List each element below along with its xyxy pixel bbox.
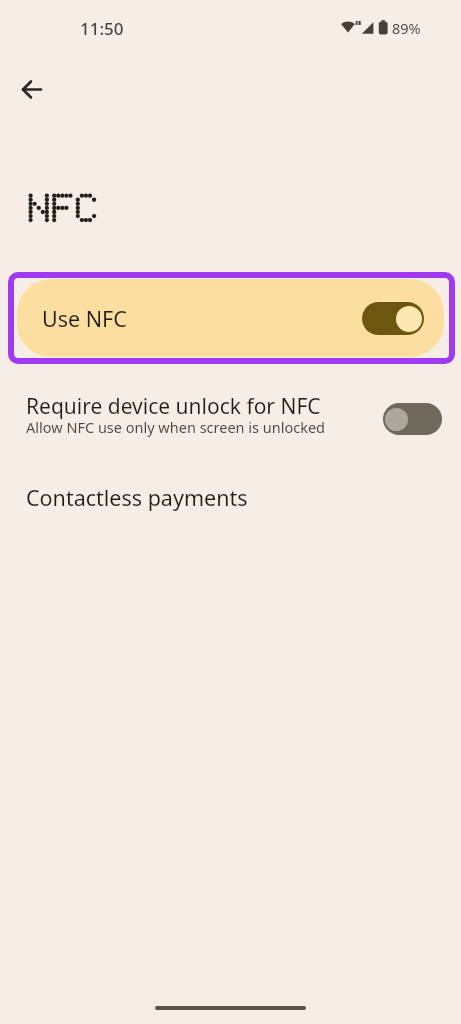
button[interactable]: Contactless payments [0,470,461,525]
staticText: Contactless payments [26,483,248,512]
staticText: 89% [392,18,421,38]
button[interactable]: Use NFC [17,279,444,357]
staticText: 11:50 [80,17,124,40]
button[interactable] [14,71,50,107]
button[interactable]: Require device unlock for NFC [0,385,461,447]
staticText: Use NFC [42,304,127,333]
staticText: Require device unlock for NFC [26,392,321,421]
staticText: Allow NFC use only when screen is unlock… [26,417,326,437]
